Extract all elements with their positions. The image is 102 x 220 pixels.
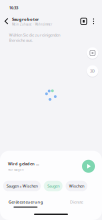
- staticText: Dienste: [70, 199, 83, 205]
- button[interactable]: Gerätesteuerung: [0, 199, 51, 208]
- staticText: Saugen: [47, 183, 59, 189]
- button[interactable]: Full screen: [86, 46, 99, 60]
- button[interactable]: 3D view: [86, 64, 99, 78]
- button[interactable]: Wischen: [66, 181, 87, 191]
- button[interactable]: Start cleaning: [82, 160, 95, 173]
- staticText: Saugroboter: [12, 16, 39, 22]
- button[interactable]: Back: [0, 15, 12, 27]
- button[interactable]: Saugen: [44, 181, 63, 191]
- button[interactable]: Map layers: [78, 15, 89, 27]
- staticText: 3D: [90, 68, 95, 74]
- staticText: Wischen: [69, 183, 84, 189]
- staticText: Wird geladen ...: [8, 161, 39, 166]
- staticText: Saugen + Wischen: [6, 183, 37, 189]
- staticText: Nur saugen: [8, 168, 24, 171]
- button[interactable]: Dienste: [51, 199, 102, 208]
- staticText: Gerätesteuerung: [8, 199, 42, 205]
- button[interactable]: Saugen + Wischen: [3, 181, 41, 191]
- staticText: Mein Zuhause · Wohnzimmer: [12, 23, 52, 26]
- staticText: 16:33: [9, 5, 18, 10]
- staticText: Wählen Sie die zu reinigenden Bereiche a…: [9, 32, 60, 43]
- button[interactable]: More options: [89, 15, 98, 27]
